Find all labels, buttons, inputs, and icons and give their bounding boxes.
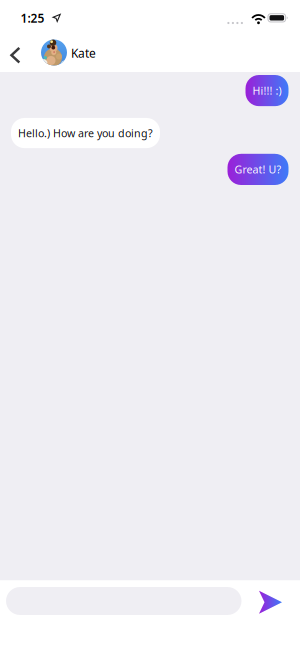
staticText: Hello.) How are you doing? [18, 126, 153, 140]
button[interactable]: Back [0, 35, 20, 71]
button[interactable]: Kate [20, 40, 96, 66]
staticText: 1:25 [20, 10, 44, 26]
staticText: Kate [71, 45, 96, 61]
staticText: Great! U? [234, 162, 281, 176]
staticText: Hi!!! :) [252, 83, 281, 98]
button[interactable]: Send [241, 588, 300, 614]
